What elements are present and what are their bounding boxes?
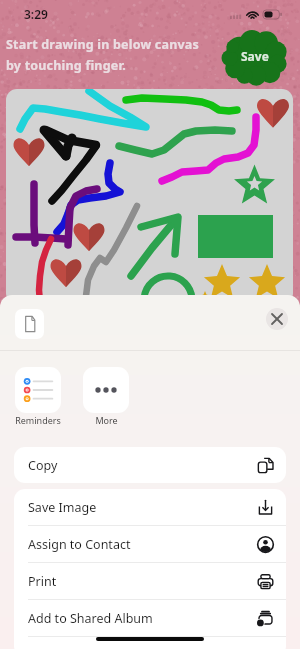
button[interactable]: Close [266, 308, 288, 330]
button[interactable]: Print [14, 563, 286, 599]
staticText: Add to Shared Album [28, 610, 153, 627]
staticText: More [95, 414, 118, 426]
staticText: Print [28, 573, 57, 590]
staticText: Copy [28, 457, 58, 474]
staticText: Assign to Contact [28, 536, 131, 553]
staticText: Start drawing in below canvas by touchin… [6, 36, 199, 73]
staticText: Save Image [28, 499, 97, 516]
button[interactable]: Save [224, 31, 286, 83]
staticText: Save [241, 48, 269, 64]
button[interactable]: Copy [14, 447, 286, 483]
button[interactable]: Assign to Contact [14, 526, 286, 562]
button[interactable]: Add to Shared Album [14, 600, 286, 636]
staticText: Reminders [15, 414, 61, 426]
staticText: 3:29 [24, 6, 48, 22]
button[interactable]: More [83, 367, 129, 431]
button[interactable]: Reminders [15, 367, 61, 431]
button[interactable]: Save Image [14, 489, 286, 525]
